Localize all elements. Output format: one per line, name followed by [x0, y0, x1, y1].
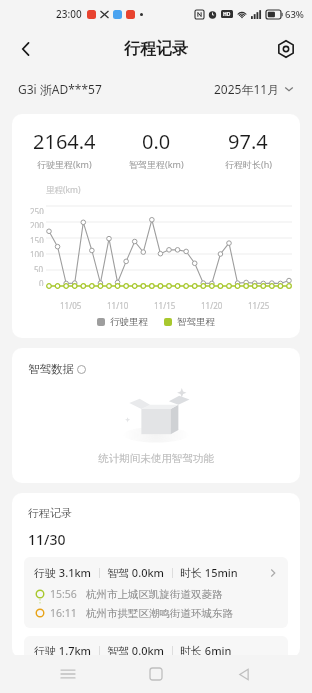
button[interactable]: 行驶 3.1km	[24, 557, 288, 628]
staticText: 250	[30, 206, 44, 214]
button[interactable]: Recents	[48, 655, 88, 693]
button[interactable]: Back	[6, 29, 46, 69]
staticText: 杭州市上城区凯旋街道双菱路	[86, 588, 223, 601]
staticText: 150	[30, 235, 44, 243]
staticText: 11/05	[60, 300, 82, 311]
staticText: 63%	[285, 8, 304, 21]
staticText: 100	[30, 249, 44, 257]
staticText: 智驾数据	[28, 362, 74, 376]
staticText: 97.4	[228, 128, 268, 155]
staticText: 50	[34, 264, 44, 272]
staticText: 11/20	[201, 300, 223, 311]
staticText: 时长 15min	[180, 565, 238, 580]
staticText: 智驾里程(km)	[129, 158, 184, 170]
staticText: G3i 浙AD***57	[18, 81, 102, 97]
staticText: 行驶 1.7km	[34, 643, 92, 658]
staticText: 统计期间未使用智驾功能	[12, 452, 300, 465]
staticText: 行程记录	[28, 506, 72, 520]
staticText: 时长 6min	[180, 643, 232, 658]
button[interactable]: 行驶 1.7km	[24, 636, 288, 658]
button[interactable]: 2025年11月	[214, 81, 294, 97]
staticText: 智驾里程	[177, 316, 215, 328]
button[interactable]: Back	[224, 655, 264, 693]
staticText: 2164.4	[33, 128, 96, 155]
staticText: 16:11	[50, 606, 77, 620]
staticText: 杭州市拱墅区潮鸣街道环城东路	[86, 607, 233, 620]
staticText: 2025年11月	[214, 81, 280, 97]
staticText: 200	[30, 220, 44, 228]
staticText: 行驶里程	[110, 316, 148, 328]
button[interactable]: Settings	[266, 29, 306, 69]
staticText: 11/25	[248, 300, 270, 311]
staticText: 行驶 3.1km	[34, 565, 92, 580]
staticText: 11/10	[107, 300, 129, 311]
staticText: 里程(km)	[46, 184, 81, 196]
staticText: 行驶里程(km)	[37, 158, 92, 170]
staticText: 11/15	[154, 300, 176, 311]
staticText: 23:00	[56, 7, 82, 21]
staticText: HD	[223, 11, 231, 18]
staticText: 15:56	[50, 587, 77, 601]
staticText: 0.0	[142, 128, 171, 155]
staticText: 智驾 0.0km	[107, 643, 165, 658]
staticText: 11/30	[28, 530, 66, 549]
staticText: 0	[39, 278, 44, 286]
staticText: 智驾 0.0km	[107, 565, 165, 580]
button[interactable]: Home	[136, 655, 176, 693]
staticText: 行程时长(h)	[225, 158, 272, 170]
staticText: 行程记录	[124, 39, 188, 59]
